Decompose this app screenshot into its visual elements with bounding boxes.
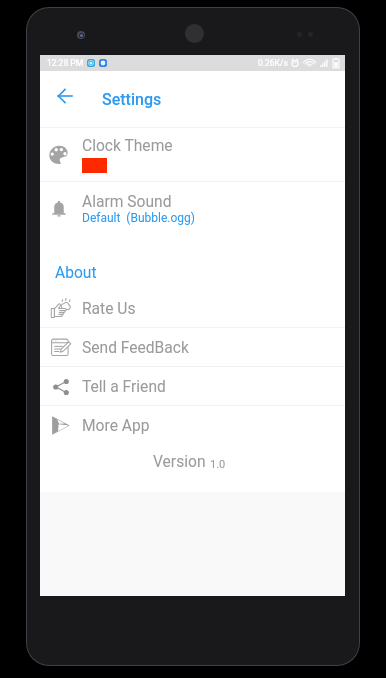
button[interactable]: More App	[40, 406, 345, 445]
staticText: Tell a Friend	[82, 378, 166, 396]
button[interactable]: Back	[58, 89, 72, 103]
staticText: 0.26K/s	[258, 58, 288, 68]
staticText: Settings	[102, 90, 162, 109]
staticText: Clock Theme	[82, 137, 173, 155]
button[interactable]: Alarm Sound	[40, 182, 345, 240]
staticText: Version	[153, 453, 210, 471]
staticText: Default (Bubble.ogg)	[82, 211, 195, 225]
staticText: 12:28 PM	[47, 58, 84, 68]
staticText: 1.0	[210, 458, 226, 471]
staticText: Send FeedBack	[82, 339, 189, 357]
staticText: About	[55, 264, 97, 282]
staticText: Alarm Sound	[82, 193, 172, 211]
button[interactable]: Clock Theme	[40, 128, 345, 181]
button[interactable]: Tell a Friend	[40, 367, 345, 406]
staticText: More App	[82, 417, 150, 435]
button[interactable]: Rate Us	[40, 289, 345, 328]
staticText: Rate Us	[82, 300, 136, 318]
button[interactable]: Send FeedBack	[40, 328, 345, 367]
